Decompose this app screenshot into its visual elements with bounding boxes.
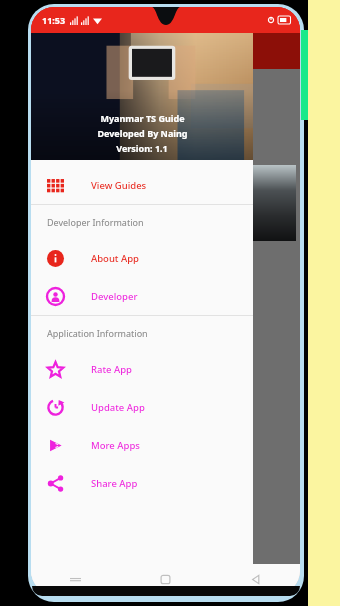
staticText: Share App xyxy=(91,477,138,490)
button[interactable]: Developer xyxy=(31,277,253,315)
button[interactable]: Update App xyxy=(31,388,253,426)
staticText: More Apps xyxy=(91,439,140,452)
staticText: 11:53 xyxy=(42,14,66,26)
staticText: Application Information xyxy=(47,327,148,339)
button[interactable]: Recents xyxy=(31,565,120,594)
button[interactable]: Home xyxy=(120,565,210,594)
staticText: Myanmar TS Guide xyxy=(100,112,185,124)
button[interactable]: Rate App xyxy=(31,350,253,388)
staticText: View Guides xyxy=(91,179,147,192)
button[interactable]: More Apps xyxy=(31,426,253,464)
staticText: Version: 1.1 xyxy=(116,142,168,154)
staticText: Developer Information xyxy=(47,216,144,228)
button[interactable]: About App xyxy=(31,239,253,277)
staticText: Update App xyxy=(91,401,145,414)
staticText: Rate App xyxy=(91,363,133,376)
button[interactable]: View Guides xyxy=(31,166,253,204)
staticText: About App xyxy=(91,252,139,265)
staticText: Developed By Naing xyxy=(97,127,188,139)
button[interactable]: Share App xyxy=(31,464,253,502)
staticText: Developer xyxy=(91,290,138,303)
button[interactable]: Back xyxy=(210,565,300,594)
